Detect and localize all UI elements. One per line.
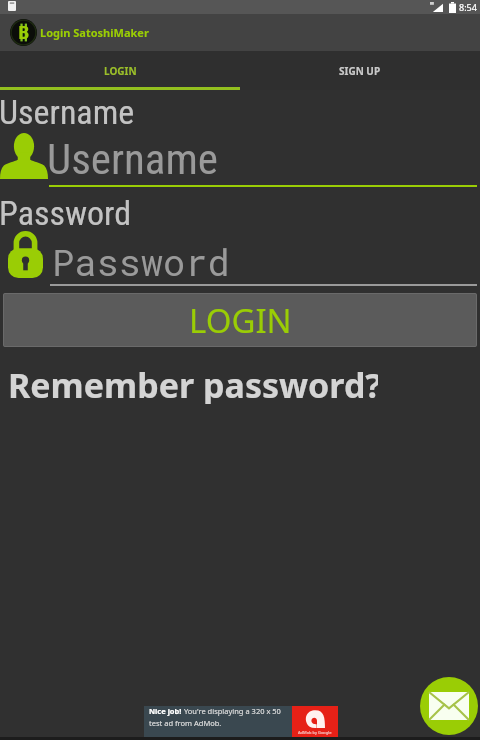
staticText: Remember password?	[8, 362, 378, 404]
button[interactable]: LOGIN	[3, 293, 477, 347]
staticText: You're displaying a 320 x 50	[182, 706, 281, 716]
staticText: Password	[52, 237, 230, 286]
staticText: Password	[0, 193, 132, 233]
button[interactable]: Nice job!	[144, 706, 338, 737]
staticText: B	[18, 21, 30, 44]
staticText: AdMob by Google	[298, 730, 332, 735]
staticText: Username	[47, 134, 218, 184]
staticText: Login SatoshiMaker	[40, 25, 149, 40]
staticText: LOGIN	[104, 64, 137, 78]
staticText: SIGN UP	[339, 64, 381, 78]
button[interactable]: Remember password?	[8, 362, 378, 404]
staticText: Nice job!	[149, 706, 182, 716]
staticText: Username	[0, 92, 135, 132]
button[interactable]: Send email	[420, 677, 478, 735]
staticText: 8:54	[459, 1, 477, 13]
button[interactable]: LOGIN	[0, 51, 240, 90]
button[interactable]: SIGN UP	[240, 51, 480, 90]
staticText: test ad from AdMob.	[149, 718, 222, 728]
staticText: LOGIN	[189, 298, 292, 343]
